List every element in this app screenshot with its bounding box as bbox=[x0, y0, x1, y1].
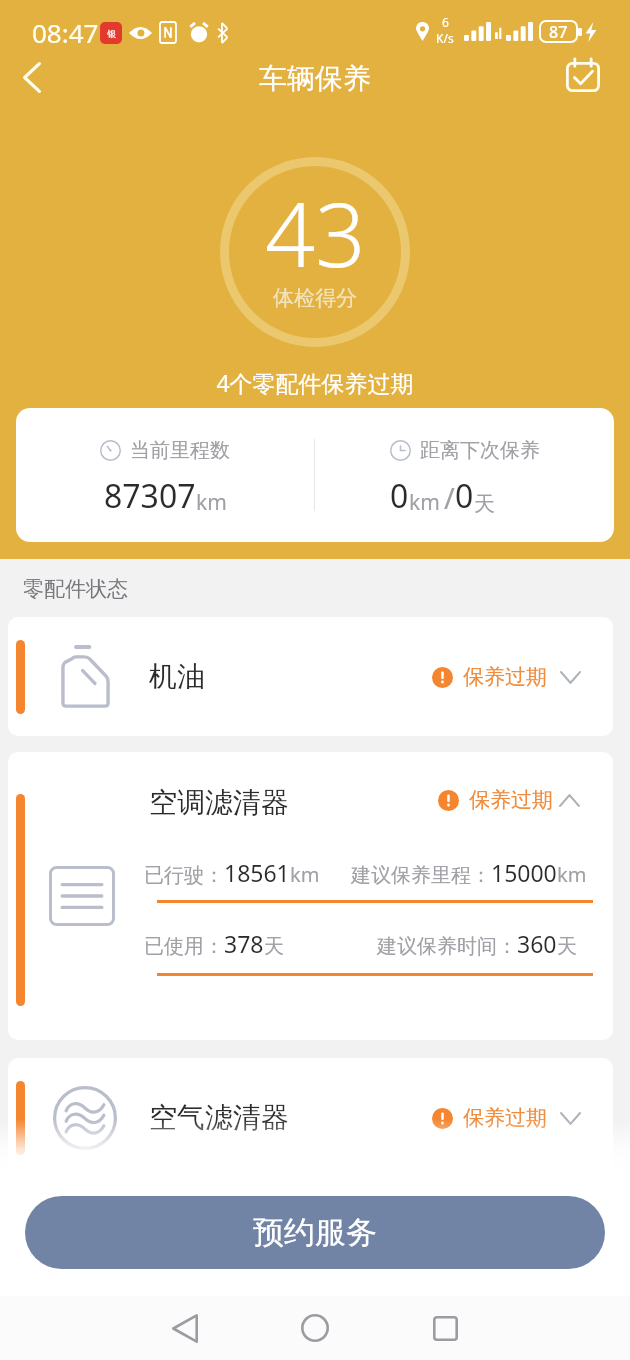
staticText: 预约服务 bbox=[253, 1213, 377, 1252]
staticText: 378 bbox=[224, 928, 264, 959]
staticText: 天 bbox=[264, 934, 284, 959]
staticText: 机油 bbox=[149, 659, 205, 694]
staticText: 天 bbox=[557, 934, 577, 959]
staticText: 43 bbox=[265, 173, 366, 293]
staticText: km bbox=[557, 861, 587, 888]
staticText: 保养过期 bbox=[469, 787, 553, 813]
staticText: 距离下次保养 bbox=[420, 438, 540, 463]
staticText: km bbox=[196, 488, 227, 517]
staticText: 0 bbox=[390, 474, 409, 518]
staticText: 4个零配件保养过期 bbox=[0, 367, 630, 398]
other: Collapse bbox=[559, 794, 580, 807]
staticText: 87307 bbox=[104, 474, 196, 518]
staticText: 08:47 bbox=[32, 15, 99, 50]
staticText: 18561 bbox=[224, 857, 290, 888]
other: Expand bbox=[560, 1112, 581, 1125]
staticText: 已行驶： bbox=[144, 863, 224, 888]
button[interactable]: 机油 bbox=[8, 617, 613, 736]
staticText: 当前里程数 bbox=[130, 438, 230, 463]
staticText: 零配件状态 bbox=[23, 576, 128, 602]
button[interactable]: Home bbox=[287, 1300, 343, 1356]
staticText: km bbox=[409, 488, 440, 517]
button[interactable]: 空调滤清器 bbox=[8, 752, 613, 1040]
staticText: K/s bbox=[436, 30, 454, 46]
staticText: 87 bbox=[549, 21, 568, 42]
staticText: 建议保养里程： bbox=[351, 863, 491, 888]
staticText: km bbox=[290, 861, 320, 888]
other: Expand bbox=[560, 671, 581, 684]
button[interactable]: Back bbox=[6, 51, 58, 103]
staticText: 天 bbox=[474, 491, 495, 517]
button[interactable]: Back bbox=[157, 1300, 213, 1356]
staticText: 360 bbox=[517, 928, 557, 959]
staticText: 空调滤清器 bbox=[149, 785, 289, 820]
staticText: 车辆保养 bbox=[259, 61, 371, 96]
button[interactable]: 预约服务 bbox=[25, 1196, 605, 1269]
staticText: 已使用： bbox=[144, 934, 224, 959]
staticText: 银 bbox=[107, 28, 116, 39]
staticText: 保养过期 bbox=[463, 1105, 547, 1131]
staticText: / bbox=[444, 478, 455, 517]
button[interactable]: 空气滤清器 bbox=[8, 1058, 613, 1177]
staticText: 体检得分 bbox=[273, 285, 357, 311]
staticText: 0 bbox=[455, 474, 474, 518]
staticText: 15000 bbox=[491, 857, 557, 888]
button[interactable]: Maintenance records bbox=[559, 51, 607, 99]
button[interactable]: Recents bbox=[417, 1300, 473, 1356]
staticText: 空气滤清器 bbox=[149, 1100, 289, 1135]
staticText: 6 bbox=[442, 14, 449, 30]
staticText: 建议保养时间： bbox=[377, 934, 517, 959]
staticText: 保养过期 bbox=[463, 664, 547, 690]
